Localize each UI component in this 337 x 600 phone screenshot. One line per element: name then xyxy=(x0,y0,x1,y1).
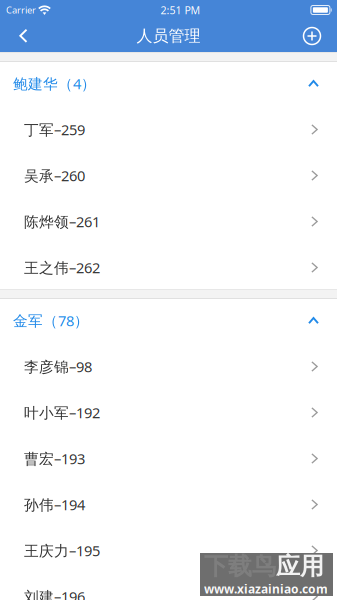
staticText: 人员管理 xyxy=(136,26,200,46)
button[interactable]: 王庆力–195 xyxy=(0,526,337,572)
button[interactable]: Add xyxy=(291,20,337,52)
button[interactable]: 曹宏–193 xyxy=(0,434,337,480)
button[interactable]: Back xyxy=(0,20,40,52)
button[interactable]: 叶小军–192 xyxy=(0,388,337,434)
button[interactable]: 陈烨领–261 xyxy=(0,197,337,243)
button[interactable]: 金军（78） xyxy=(0,299,337,342)
button[interactable]: 李彦锦–98 xyxy=(0,342,337,388)
button[interactable]: 吴承–260 xyxy=(0,151,337,197)
staticText: 曹宏–193 xyxy=(24,449,85,468)
button[interactable]: 鲍建华（4） xyxy=(0,62,337,105)
staticText: 李彦锦–98 xyxy=(24,357,92,376)
button[interactable]: 孙伟–194 xyxy=(0,480,337,526)
button[interactable]: 王之伟–262 xyxy=(0,243,337,289)
staticText: 叶小军–192 xyxy=(24,403,100,422)
staticText: 孙伟–194 xyxy=(24,495,85,514)
button[interactable]: 刘建–196 xyxy=(0,572,337,600)
staticText: 金军（78） xyxy=(13,311,89,330)
staticText: 吴承–260 xyxy=(24,166,85,185)
staticText: 王庆力–195 xyxy=(24,541,100,560)
staticText: 2:51 PM xyxy=(160,3,200,17)
staticText: 应用 xyxy=(276,551,324,581)
staticText: 陈烨领–261 xyxy=(24,212,100,231)
staticText: 丁军–259 xyxy=(24,120,85,139)
staticText: Carrier xyxy=(6,4,36,16)
staticText: www.xiazainiao.com xyxy=(204,581,328,597)
button[interactable]: 丁军–259 xyxy=(0,105,337,151)
staticText: 刘建–196 xyxy=(24,587,85,600)
staticText: 鲍建华（4） xyxy=(13,74,96,93)
staticText: 下载鸟 xyxy=(204,551,276,581)
staticText: 王之伟–262 xyxy=(24,258,100,277)
